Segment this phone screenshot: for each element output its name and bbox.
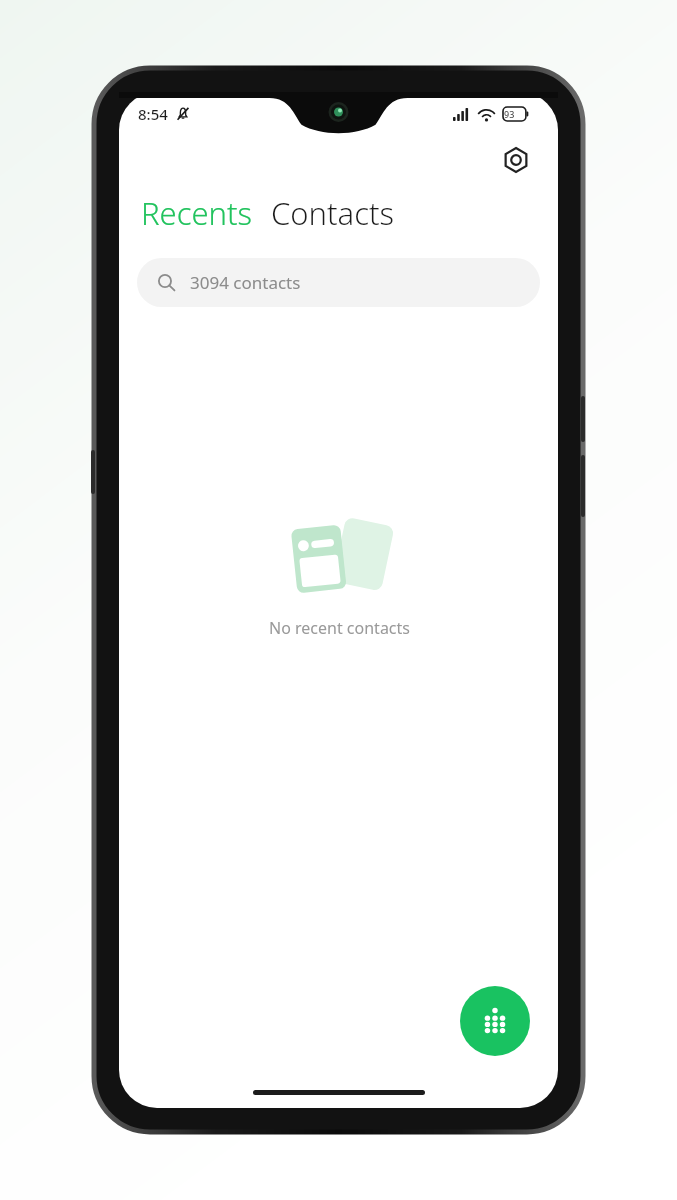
staticText: Contacts: [271, 192, 395, 234]
button[interactable]: Settings: [496, 140, 536, 180]
staticText: 3094 contacts: [190, 271, 301, 294]
staticText: 93: [504, 108, 515, 120]
staticText: Recents: [141, 192, 253, 234]
staticText: 8:54: [138, 104, 168, 124]
button[interactable]: 3094 contacts: [137, 258, 540, 307]
staticText: No recent contacts: [269, 617, 410, 639]
button[interactable]: Dialpad: [460, 986, 530, 1056]
button[interactable]: Recents: [139, 190, 255, 236]
button[interactable]: Contacts: [269, 190, 397, 236]
